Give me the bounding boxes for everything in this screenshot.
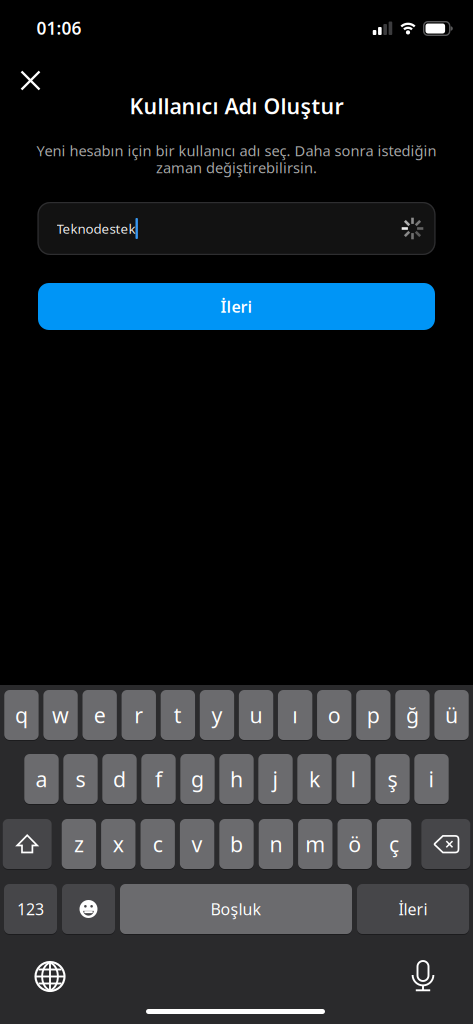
button[interactable]: ü bbox=[434, 690, 469, 740]
button[interactable]: f bbox=[141, 754, 176, 804]
button[interactable]: z bbox=[62, 819, 96, 869]
staticText: m bbox=[305, 830, 325, 858]
staticText: Yeni hesabın için bir kullanıcı adı seç.… bbox=[36, 141, 436, 160]
button[interactable]: ö bbox=[337, 819, 372, 869]
button[interactable]: Delete bbox=[421, 819, 470, 869]
staticText: j bbox=[272, 765, 278, 793]
button[interactable]: Dictation bbox=[408, 960, 438, 992]
button[interactable]: x bbox=[101, 819, 135, 869]
staticText: İleri bbox=[398, 898, 427, 920]
button[interactable]: o bbox=[317, 690, 351, 740]
button[interactable]: Shift bbox=[3, 819, 52, 869]
button[interactable]: ı bbox=[278, 690, 312, 740]
button[interactable]: a bbox=[24, 754, 59, 804]
staticText: r bbox=[134, 701, 143, 729]
button[interactable]: e bbox=[82, 690, 117, 740]
staticText: h bbox=[230, 765, 243, 793]
button[interactable]: Emoji bbox=[62, 884, 115, 934]
staticText: a bbox=[35, 765, 47, 793]
button[interactable]: Close bbox=[13, 63, 47, 97]
staticText: u bbox=[250, 701, 263, 729]
staticText: f bbox=[155, 765, 162, 793]
button[interactable]: l bbox=[336, 754, 371, 804]
button[interactable]: İleri bbox=[38, 283, 435, 330]
button[interactable]: İleri bbox=[357, 884, 469, 934]
button[interactable]: q bbox=[4, 690, 39, 740]
button[interactable]: k bbox=[297, 754, 332, 804]
staticText: t bbox=[174, 701, 182, 729]
button[interactable]: w bbox=[43, 690, 78, 740]
staticText: y bbox=[211, 701, 222, 729]
button[interactable]: t bbox=[161, 690, 195, 740]
staticText: ö bbox=[348, 830, 361, 858]
staticText: c bbox=[153, 830, 163, 858]
button[interactable]: ğ bbox=[395, 690, 430, 740]
staticText: w bbox=[52, 701, 69, 729]
staticText: l bbox=[350, 765, 356, 793]
staticText: o bbox=[328, 701, 341, 729]
button[interactable]: u bbox=[239, 690, 273, 740]
button[interactable]: b bbox=[219, 819, 254, 869]
staticText: v bbox=[192, 830, 203, 858]
staticText: ı bbox=[292, 701, 298, 729]
staticText: x bbox=[113, 830, 124, 858]
staticText: İleri bbox=[220, 296, 252, 317]
button[interactable]: Next keyboard bbox=[35, 961, 65, 991]
staticText: q bbox=[15, 701, 28, 729]
staticText: 01:06 bbox=[36, 16, 81, 39]
staticText: p bbox=[367, 701, 380, 729]
button[interactable]: j bbox=[258, 754, 293, 804]
staticText: ç bbox=[389, 830, 399, 858]
button[interactable]: g bbox=[180, 754, 215, 804]
staticText: Boşluk bbox=[210, 898, 261, 920]
button[interactable]: h bbox=[219, 754, 254, 804]
staticText: 123 bbox=[17, 898, 44, 920]
button[interactable]: c bbox=[140, 819, 175, 869]
staticText: ş bbox=[387, 765, 397, 793]
button[interactable]: ş bbox=[375, 754, 410, 804]
button[interactable]: v bbox=[180, 819, 214, 869]
staticText: b bbox=[230, 830, 243, 858]
staticText: g bbox=[191, 765, 204, 793]
button[interactable]: ç bbox=[377, 819, 411, 869]
staticText: Teknodestek bbox=[56, 220, 135, 237]
button[interactable]: r bbox=[122, 690, 156, 740]
staticText: Kullanıcı Adı Oluştur bbox=[129, 92, 343, 120]
button[interactable]: i bbox=[414, 754, 449, 804]
button[interactable]: Username bbox=[37, 202, 435, 255]
button[interactable]: Boşluk bbox=[120, 884, 352, 934]
button[interactable]: n bbox=[259, 819, 293, 869]
staticText: n bbox=[269, 830, 282, 858]
staticText: z bbox=[74, 830, 84, 858]
staticText: ğ bbox=[406, 701, 419, 729]
staticText: zaman değiştirebilirsin. bbox=[156, 158, 317, 177]
staticText: i bbox=[428, 765, 434, 793]
button[interactable]: p bbox=[356, 690, 391, 740]
button[interactable]: m bbox=[298, 819, 332, 869]
button[interactable]: y bbox=[200, 690, 234, 740]
staticText: ü bbox=[445, 701, 458, 729]
staticText: k bbox=[309, 765, 320, 793]
staticText: e bbox=[94, 701, 106, 729]
staticText: d bbox=[113, 765, 126, 793]
button[interactable]: Numbers bbox=[4, 884, 57, 934]
button[interactable]: d bbox=[102, 754, 137, 804]
button[interactable]: s bbox=[63, 754, 98, 804]
staticText: s bbox=[75, 765, 85, 793]
